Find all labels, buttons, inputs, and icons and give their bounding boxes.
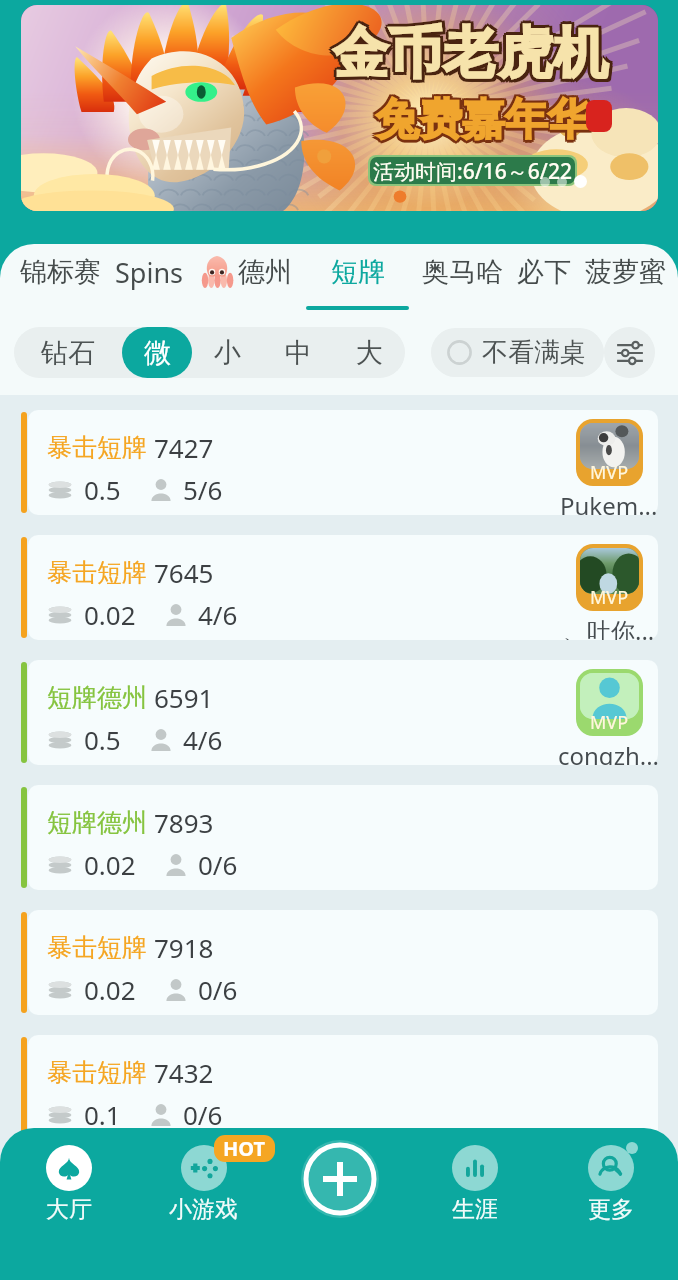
button[interactable]: Create table <box>272 1128 407 1280</box>
staticText: 大 <box>356 336 383 370</box>
staticText: 金币老虎机 <box>330 19 605 88</box>
button[interactable]: 短牌德州 <box>21 785 658 890</box>
button[interactable]: 钻石 <box>14 327 122 378</box>
staticText: 兔费嘉年华 <box>379 93 594 147</box>
staticText: 兔费嘉年华 <box>378 95 593 149</box>
staticText: 金币老虎机 <box>336 19 611 88</box>
staticText: 7645 <box>154 555 214 590</box>
staticText: 0/6 <box>198 847 238 882</box>
button[interactable]: Filter settings <box>604 327 655 378</box>
staticText: 德州 <box>238 255 292 289</box>
staticText: 7918 <box>154 930 214 965</box>
button[interactable]: 生涯 <box>407 1128 542 1280</box>
staticText: 0.5 <box>84 722 121 757</box>
staticText: 短牌德州 <box>47 807 147 838</box>
button[interactable]: 不看满桌 <box>431 328 604 377</box>
staticText: 0/6 <box>198 972 238 1007</box>
staticText: 暴击短牌 <box>47 432 147 463</box>
staticText: 0.5 <box>84 472 121 507</box>
button[interactable]: 中 <box>263 327 334 378</box>
staticText: 金币老虎机 <box>331 17 606 86</box>
staticText: MVP <box>590 460 629 485</box>
staticText: 7893 <box>154 805 214 840</box>
staticText: 暴击短牌 <box>47 557 147 588</box>
button[interactable]: 锦标赛 <box>20 244 101 314</box>
staticText: MVP <box>590 585 629 610</box>
button[interactable]: 暴击短牌 <box>21 410 658 515</box>
button[interactable]: 微 <box>122 327 192 378</box>
staticText: 6591 <box>154 680 214 715</box>
staticText: 大厅 <box>46 1195 92 1224</box>
staticText: 7432 <box>154 1055 214 1090</box>
button[interactable]: 暴击短牌 <box>21 1035 658 1140</box>
staticText: 短牌德州 <box>47 682 147 713</box>
staticText: 更多 <box>588 1195 634 1224</box>
staticText: 锦标赛 <box>20 255 101 289</box>
button[interactable]: 德州 <box>198 244 292 314</box>
staticText: Pukem... <box>560 489 658 515</box>
staticText: 0.02 <box>84 847 136 882</box>
staticText: 小 <box>214 336 241 370</box>
staticText: Spins <box>115 254 184 291</box>
staticText: 0/6 <box>183 1097 223 1132</box>
staticText: 0.1 <box>84 1097 121 1132</box>
staticText: 兔费嘉年华 <box>374 95 589 149</box>
staticText: 兔费嘉年华 <box>376 96 591 150</box>
staticText: 金币老虎机 <box>333 22 608 91</box>
staticText: 5/6 <box>183 472 223 507</box>
staticText: 暴击短牌 <box>47 1057 147 1088</box>
staticText: 0.02 <box>84 597 136 632</box>
staticText: 金币老虎机 <box>333 19 608 88</box>
button[interactable]: 小 <box>192 327 263 378</box>
staticText: 奥马哈 <box>422 255 503 289</box>
button[interactable]: 金币老虎机 <box>21 5 658 211</box>
staticText: 钻石 <box>41 336 95 370</box>
staticText: 中 <box>285 336 312 370</box>
button[interactable]: 暴击短牌 <box>21 535 658 640</box>
staticText: 必下 <box>517 255 571 289</box>
button[interactable]: Spins <box>115 244 184 314</box>
button[interactable]: 大 <box>334 327 405 378</box>
staticText: 菠萝蜜 <box>585 255 666 289</box>
staticText: 金币老虎机 <box>333 16 608 85</box>
staticText: 兔费嘉年华 <box>376 91 591 145</box>
staticText: 兔费嘉年华 <box>374 93 589 147</box>
button[interactable]: 必下 <box>517 244 571 314</box>
staticText: 生涯 <box>452 1195 498 1224</box>
staticText: 金币老虎机 <box>336 22 611 91</box>
staticText: 0.02 <box>84 972 136 1007</box>
button[interactable]: 大厅 <box>1 1128 136 1280</box>
button[interactable]: 奥马哈 <box>422 244 503 314</box>
staticText: 暴击短牌 <box>47 932 147 963</box>
button[interactable]: 菠萝蜜 <box>585 244 666 314</box>
button[interactable]: 短牌德州 <box>21 660 658 765</box>
staticText: 、吐你... <box>563 614 655 640</box>
button[interactable]: 暴击短牌 <box>21 910 658 1015</box>
staticText: 短牌 <box>331 255 385 289</box>
staticText: 小游戏 <box>169 1195 238 1224</box>
button[interactable]: 更多 <box>543 1128 678 1280</box>
staticText: HOT <box>223 1135 266 1162</box>
staticText: 金币老虎机 <box>336 17 611 86</box>
staticText: 活动时间:6/16～6/22 <box>373 157 572 184</box>
staticText: 金币老虎机 <box>331 22 606 91</box>
staticText: 兔费嘉年华 <box>374 91 589 145</box>
staticText: 7427 <box>154 430 214 465</box>
staticText: congzh... <box>558 739 660 765</box>
staticText: 兔费嘉年华 <box>378 91 593 145</box>
button[interactable]: 短牌 <box>306 244 409 314</box>
staticText: MVP <box>590 710 629 735</box>
staticText: 微 <box>144 336 171 370</box>
staticText: 4/6 <box>198 597 238 632</box>
staticText: 4/6 <box>183 722 223 757</box>
staticText: 不看满桌 <box>482 336 586 369</box>
staticText: 兔费嘉年华 <box>376 93 591 147</box>
button[interactable]: HOT <box>136 1128 271 1280</box>
